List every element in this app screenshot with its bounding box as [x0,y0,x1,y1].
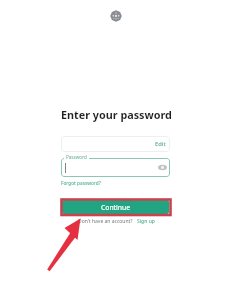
staticText: Edit [155,140,166,148]
staticText: Enter your password [61,107,172,122]
staticText: Don't have an account? [78,218,133,225]
button[interactable]: Continue [62,200,169,214]
button[interactable]: Show password [61,158,170,177]
other: Show password [158,164,167,171]
staticText: Sign up [137,218,155,225]
button[interactable]: Edit [61,136,170,152]
staticText: Continue [101,203,131,212]
button[interactable]: Sign up [137,218,155,225]
staticText: Password [66,154,87,160]
button[interactable]: Forgot password? [61,180,101,186]
staticText: Forgot password? [61,180,101,186]
